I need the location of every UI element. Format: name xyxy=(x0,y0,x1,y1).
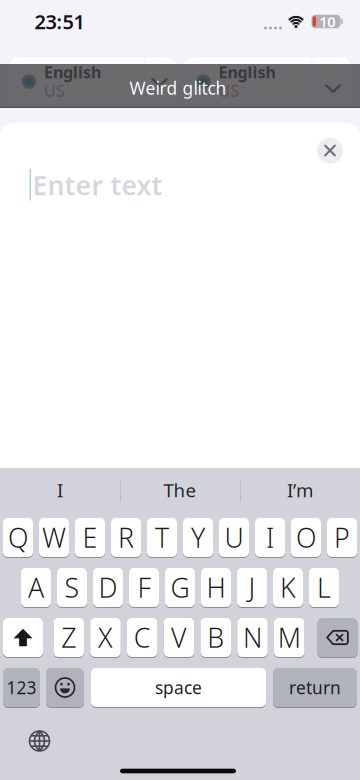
staticText: 10 xyxy=(319,12,335,31)
staticText: Enter text xyxy=(32,167,162,203)
button[interactable]: Delete xyxy=(317,618,357,657)
button[interactable]: G xyxy=(165,568,195,607)
staticText: U xyxy=(224,520,243,555)
staticText: US xyxy=(44,80,65,101)
staticText: 23:51 xyxy=(34,8,84,35)
staticText: 123 xyxy=(6,676,36,699)
staticText: F xyxy=(137,570,150,605)
button[interactable]: U xyxy=(219,518,249,557)
button[interactable]: Clear text xyxy=(317,137,343,163)
button[interactable]: C xyxy=(127,618,157,657)
staticText: J xyxy=(248,570,255,605)
button[interactable]: I xyxy=(255,518,285,557)
staticText: English xyxy=(218,61,275,83)
staticText: Z xyxy=(61,620,76,655)
staticText: O xyxy=(296,520,316,555)
button[interactable]: D xyxy=(93,568,123,607)
staticText: R xyxy=(118,520,134,555)
button[interactable]: J xyxy=(237,568,267,607)
button[interactable]: H xyxy=(201,568,231,607)
button[interactable]: Next keyboard xyxy=(26,728,52,754)
staticText: L xyxy=(317,570,331,605)
staticText: D xyxy=(98,570,117,605)
button[interactable]: E xyxy=(75,518,105,557)
button[interactable]: space xyxy=(91,668,266,707)
staticText: Q xyxy=(8,520,28,555)
button[interactable]: I xyxy=(5,470,115,510)
button[interactable]: M xyxy=(274,618,304,657)
button[interactable]: L xyxy=(309,568,339,607)
button[interactable]: W xyxy=(39,518,69,557)
staticText: S xyxy=(64,570,79,605)
button[interactable]: T xyxy=(147,518,177,557)
staticText: W xyxy=(42,520,66,555)
button[interactable]: F xyxy=(129,568,159,607)
button[interactable]: Q xyxy=(3,518,33,557)
staticText: I xyxy=(266,520,274,555)
staticText: G xyxy=(170,570,189,605)
button[interactable]: K xyxy=(273,568,303,607)
staticText: A xyxy=(28,570,44,605)
staticText: I xyxy=(57,478,63,502)
staticText: P xyxy=(334,520,350,555)
button[interactable]: The xyxy=(125,470,235,510)
button[interactable]: Emoji xyxy=(46,668,84,707)
button[interactable]: R xyxy=(111,518,141,557)
button[interactable]: I’m xyxy=(245,470,355,510)
button[interactable]: V xyxy=(164,618,194,657)
staticText: T xyxy=(155,520,169,555)
button[interactable]: English xyxy=(183,57,351,106)
staticText: M xyxy=(278,620,301,655)
staticText: English xyxy=(44,61,101,83)
button[interactable]: P xyxy=(327,518,357,557)
staticText: US xyxy=(218,80,239,101)
staticText: E xyxy=(82,520,97,555)
staticText: C xyxy=(134,620,151,655)
button[interactable]: O xyxy=(291,518,321,557)
staticText: Y xyxy=(191,520,205,555)
button[interactable]: A xyxy=(21,568,51,607)
button[interactable]: return xyxy=(273,668,357,707)
staticText: B xyxy=(207,620,224,655)
button[interactable]: X xyxy=(90,618,121,657)
button[interactable]: N xyxy=(237,618,268,657)
button[interactable]: Shift xyxy=(3,618,43,657)
button[interactable]: S xyxy=(57,568,87,607)
staticText: return xyxy=(289,676,341,699)
staticText: N xyxy=(243,620,262,655)
button[interactable]: 123 xyxy=(3,668,40,707)
button[interactable]: B xyxy=(200,618,231,657)
button[interactable]: English xyxy=(9,57,176,106)
staticText: H xyxy=(206,570,225,605)
button[interactable]: Y xyxy=(183,518,213,557)
staticText: X xyxy=(98,620,113,655)
staticText: space xyxy=(155,676,202,699)
staticText: The xyxy=(163,478,196,502)
staticText: I’m xyxy=(287,478,313,502)
button[interactable]: Z xyxy=(53,618,84,657)
staticText: K xyxy=(280,570,296,605)
staticText: V xyxy=(171,620,187,655)
staticText: Weird glitch xyxy=(129,76,226,99)
